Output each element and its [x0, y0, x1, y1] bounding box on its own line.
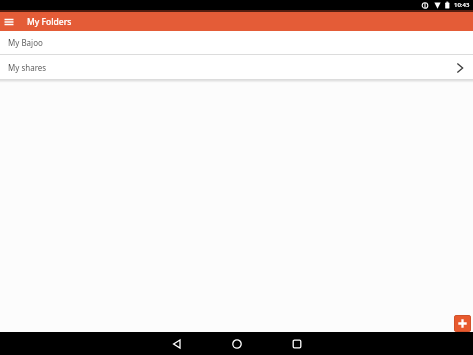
button[interactable]	[277, 332, 317, 355]
button[interactable]	[217, 332, 257, 355]
staticText: 10:43	[454, 1, 470, 9]
button[interactable]	[0, 12, 17, 31]
button[interactable]: My Bajoo	[0, 31, 473, 54]
staticText: My Folders	[27, 16, 72, 28]
button[interactable]	[157, 332, 197, 355]
staticText: My shares	[8, 62, 47, 73]
button[interactable]	[454, 315, 471, 332]
staticText: My Bajoo	[8, 37, 43, 48]
button[interactable]: My shares	[0, 55, 473, 79]
